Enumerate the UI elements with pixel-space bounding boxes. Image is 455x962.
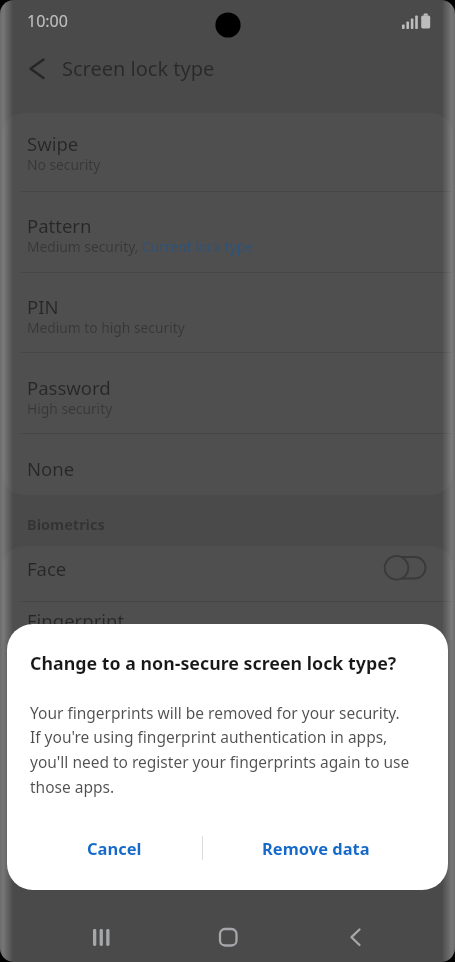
button[interactable]: PIN bbox=[0, 276, 455, 357]
button[interactable]: Fingerprint bbox=[0, 589, 455, 651]
button[interactable]: Cancel bbox=[54, 822, 174, 874]
staticText: Fingerprint bbox=[27, 608, 125, 633]
button[interactable] bbox=[212, 922, 244, 952]
staticText: Face bbox=[27, 556, 67, 581]
button[interactable]: Remove data bbox=[240, 822, 392, 874]
staticText: 10:00 bbox=[27, 10, 68, 32]
staticText: Your fingerprints will be removed for yo… bbox=[30, 702, 410, 798]
staticText: Change to a non-secure screen lock type? bbox=[30, 651, 397, 675]
staticText: Remove data bbox=[262, 837, 370, 859]
button[interactable]: Pattern bbox=[0, 195, 455, 276]
staticText: Screen lock type bbox=[62, 55, 215, 82]
staticText: Biometrics bbox=[27, 514, 105, 534]
button[interactable] bbox=[85, 922, 117, 952]
staticText: Pattern bbox=[27, 213, 92, 238]
staticText: Swipe bbox=[27, 131, 79, 156]
staticText: High security bbox=[27, 399, 113, 418]
button[interactable]: Password bbox=[0, 357, 455, 438]
staticText: No security bbox=[27, 155, 101, 174]
button[interactable] bbox=[22, 54, 52, 84]
staticText: Password bbox=[27, 375, 111, 400]
staticText: Medium security, Current lock type bbox=[27, 237, 253, 256]
staticText: PIN bbox=[27, 294, 59, 319]
staticText: Cancel bbox=[87, 837, 142, 859]
staticText: Medium to high security bbox=[27, 318, 185, 337]
button[interactable] bbox=[340, 922, 372, 952]
button[interactable]: Face bbox=[0, 537, 455, 599]
button[interactable]: Swipe bbox=[0, 113, 455, 194]
button[interactable]: None bbox=[0, 437, 455, 499]
staticText: None bbox=[27, 456, 75, 481]
